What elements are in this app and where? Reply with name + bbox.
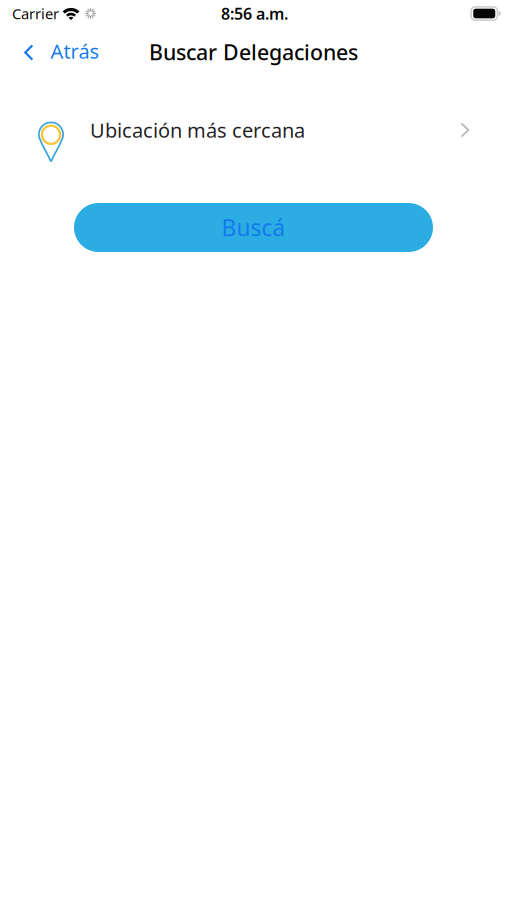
staticText: Buscá [221, 212, 285, 242]
button[interactable]: Ubicación más cercana [0, 100, 507, 160]
staticText: Buscar Delegaciones [149, 38, 358, 66]
staticText: Ubicación más cercana [90, 117, 305, 143]
button[interactable]: Buscá [74, 203, 433, 252]
staticText: Atrás [51, 38, 100, 64]
staticText: 8:56 a.m. [221, 3, 288, 24]
button[interactable]: Atrás [0, 28, 114, 72]
staticText: Carrier [12, 4, 59, 23]
